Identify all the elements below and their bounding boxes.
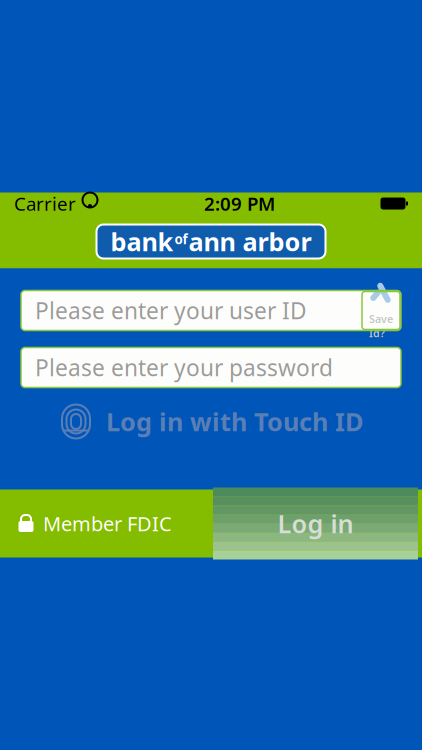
staticText: Member FDIC bbox=[43, 510, 172, 537]
staticText: ann arbor bbox=[188, 225, 311, 258]
staticText: of bbox=[174, 230, 187, 248]
staticText: Save Id? bbox=[369, 312, 393, 340]
staticText: Please enter your user ID bbox=[35, 295, 307, 325]
staticText: Please enter your password bbox=[35, 352, 333, 382]
button[interactable]: Log in bbox=[213, 495, 418, 552]
button[interactable]: Log in with Touch ID bbox=[48, 395, 374, 447]
staticText: Log in with Touch ID bbox=[106, 405, 364, 438]
staticText: bank bbox=[110, 225, 173, 258]
button[interactable]: Member FDIC bbox=[0, 500, 172, 547]
staticText: Log in bbox=[277, 507, 353, 540]
staticText: 2:09 PM bbox=[204, 191, 275, 216]
staticText: Carrier bbox=[14, 191, 76, 216]
button[interactable]: Save Id bbox=[362, 291, 401, 329]
